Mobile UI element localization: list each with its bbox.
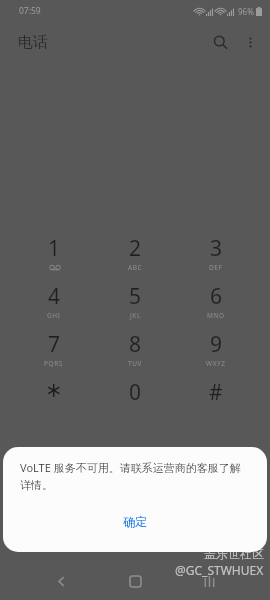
staticText: 96% [238,6,254,17]
staticText: 电话 [18,33,48,52]
button[interactable]: 2 [101,234,169,282]
staticText: # [209,378,223,407]
button[interactable]: 9 [182,330,250,378]
staticText: JKL [130,311,142,320]
button[interactable]: More options [236,28,264,56]
button[interactable]: 8 [101,330,169,378]
staticText: 2 [129,234,142,263]
staticText: @GC_STWHUEX [175,562,264,578]
button[interactable]: 5 [101,282,169,330]
button[interactable]: 6 [182,282,250,330]
staticText: 5 [129,282,142,311]
staticText: ∗ [45,378,63,402]
staticText: 3 [210,234,223,263]
staticText: VoLTE 服务不可用。请联系运营商的客服了解详情。 [20,460,250,493]
staticText: MNO [207,311,225,320]
staticText: 7 [48,330,61,359]
staticText: 确定 [123,514,147,529]
button[interactable]: Home [118,564,152,598]
staticText: 0 [129,378,142,407]
button[interactable]: Back [44,564,78,598]
staticText: 1 [48,234,61,263]
staticText: 盖乐世社区 [204,546,264,561]
staticText: 6 [210,282,223,311]
button[interactable]: Search [204,26,236,58]
button[interactable]: # [182,378,250,426]
staticText: WXYZ [206,359,226,368]
button[interactable]: 3 [182,234,250,282]
staticText: TUV [128,359,143,368]
button[interactable]: 确定 [3,504,267,538]
staticText: 9 [210,330,223,359]
button[interactable]: 7 [20,330,88,378]
button[interactable]: 4 [20,282,88,330]
staticText: 07:59 [19,5,41,17]
staticText: PQRS [44,359,64,368]
staticText: 4 [48,282,61,311]
button[interactable]: 0 [101,378,169,426]
staticText: DEF [209,263,223,272]
staticText: 8 [129,330,142,359]
staticText: ABC [128,263,143,272]
button[interactable]: Recent apps [192,564,226,598]
button[interactable]: 1 [20,234,88,282]
staticText: GHI [47,311,61,320]
button[interactable]: ∗ [20,378,88,426]
